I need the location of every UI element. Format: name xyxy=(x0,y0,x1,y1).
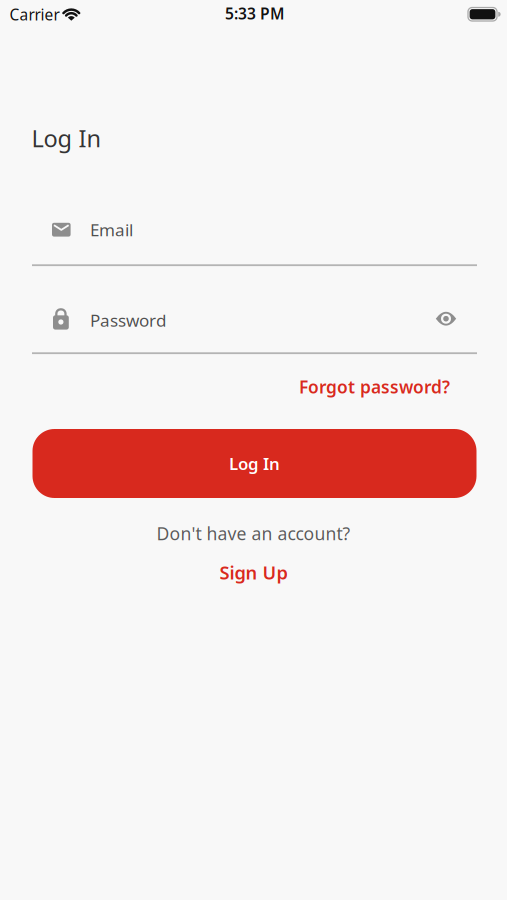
button[interactable]: Log In xyxy=(32,429,476,498)
staticText: Password xyxy=(90,308,166,332)
staticText: Don't have an account? xyxy=(156,521,350,545)
staticText: Sign Up xyxy=(219,560,287,585)
staticText: Carrier xyxy=(9,4,59,25)
staticText: 5:33 PM xyxy=(225,3,284,24)
button[interactable]: Sign Up xyxy=(219,560,287,585)
staticText: Email xyxy=(90,218,133,241)
staticText: Log In xyxy=(229,452,280,475)
staticText: Forgot password? xyxy=(299,375,450,399)
button[interactable]: Show password xyxy=(431,304,461,334)
button[interactable]: Forgot password? xyxy=(299,375,450,399)
staticText: Log In xyxy=(31,122,101,154)
